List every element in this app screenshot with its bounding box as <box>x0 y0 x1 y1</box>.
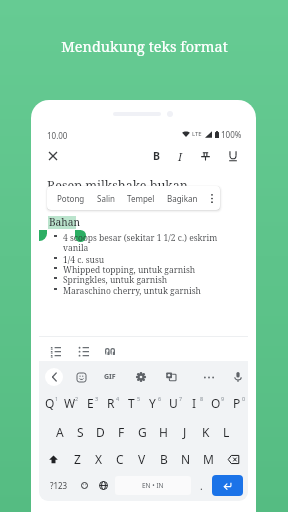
staticText: V <box>138 451 146 467</box>
button[interactable]: I <box>184 392 205 414</box>
button[interactable]: Bulleted list <box>73 341 93 361</box>
button[interactable]: Strikethrough <box>195 146 215 166</box>
button[interactable]: Shift <box>39 448 67 470</box>
button[interactable]: G <box>132 421 153 443</box>
button[interactable]: B <box>146 146 166 166</box>
staticText: H <box>159 424 168 440</box>
button[interactable]: Y <box>142 392 163 414</box>
button[interactable]: Bagikan <box>161 186 204 210</box>
staticText: 4 scoops besar (sekitar 1 1/2 c.) eskrim… <box>63 232 248 254</box>
staticText: ?123 <box>50 480 68 491</box>
staticText: F <box>118 424 125 440</box>
button[interactable]: S <box>70 421 90 443</box>
button[interactable]: W <box>60 392 80 414</box>
button[interactable]: C <box>109 448 131 470</box>
staticText: 1 <box>55 395 59 402</box>
staticText: 1/4 c. susu <box>63 254 248 266</box>
button[interactable]: Tempel <box>121 186 161 210</box>
staticText: Bahan <box>49 215 80 229</box>
button[interactable]: B <box>153 448 175 470</box>
button[interactable]: M <box>197 448 219 470</box>
staticText: LTE <box>192 130 202 138</box>
staticText: GIF <box>104 372 116 382</box>
button[interactable]: F <box>111 421 132 443</box>
button[interactable]: Translate <box>162 368 180 386</box>
staticText: I <box>178 149 183 164</box>
button[interactable]: Voice input <box>229 368 247 386</box>
button[interactable]: Settings <box>132 368 150 386</box>
button[interactable]: Backspace <box>219 448 248 470</box>
staticText: 8 <box>200 395 204 402</box>
staticText: D <box>96 424 105 440</box>
staticText: K <box>202 424 210 440</box>
staticText: Whipped topping, untuk garnish <box>63 264 248 276</box>
staticText: B <box>160 451 168 467</box>
button[interactable]: P <box>226 392 247 414</box>
staticText: Q <box>45 395 55 411</box>
staticText: Maraschino cherry, untuk garnish <box>63 285 248 297</box>
staticText: N <box>181 451 191 467</box>
staticText: 6 <box>158 395 162 402</box>
staticText: 9 <box>221 395 225 402</box>
staticText: R <box>107 395 115 411</box>
staticText: S <box>77 424 84 440</box>
button[interactable]: D <box>90 421 111 443</box>
button[interactable]: ?123 <box>42 475 75 496</box>
button[interactable]: T <box>121 392 142 414</box>
button[interactable]: . <box>193 475 210 496</box>
button[interactable]: EN • IN <box>115 476 191 495</box>
button[interactable]: Q <box>40 392 60 414</box>
staticText: P <box>233 395 241 411</box>
button[interactable]: More options <box>200 368 218 386</box>
button[interactable]: J <box>174 421 195 443</box>
staticText: 100% <box>221 129 242 139</box>
staticText: T <box>128 395 135 411</box>
staticText: J <box>183 424 187 440</box>
button[interactable]: E <box>80 392 100 414</box>
button[interactable]: O <box>205 392 226 414</box>
staticText: Salin <box>97 193 115 204</box>
button[interactable]: GIF <box>101 368 119 386</box>
staticText: 3 <box>95 395 99 402</box>
button[interactable]: H <box>153 421 174 443</box>
staticText: A <box>56 424 64 440</box>
button[interactable]: Emoji <box>75 475 94 496</box>
staticText: L <box>223 424 230 440</box>
button[interactable]: Salin <box>91 186 121 210</box>
button[interactable]: Close <box>43 146 63 166</box>
button[interactable]: R <box>100 392 121 414</box>
button[interactable]: N <box>175 448 197 470</box>
staticText: 0 <box>242 395 246 402</box>
staticText: . <box>200 479 203 493</box>
staticText: I <box>192 395 197 411</box>
staticText: G <box>138 424 147 440</box>
staticText: Y <box>149 395 156 411</box>
button[interactable]: L <box>216 421 237 443</box>
staticText: B <box>153 149 160 163</box>
button[interactable]: Language <box>94 475 113 496</box>
button[interactable]: More options <box>204 186 220 210</box>
button[interactable]: X <box>88 448 109 470</box>
staticText: C <box>116 451 124 467</box>
button[interactable]: Quote <box>100 341 120 361</box>
button[interactable]: V <box>131 448 153 470</box>
button[interactable]: I <box>170 146 190 166</box>
button[interactable]: Numbered list <box>45 341 65 361</box>
button[interactable]: Stickers <box>72 368 90 386</box>
staticText: W <box>64 395 76 411</box>
staticText: Tempel <box>127 193 155 204</box>
staticText: EN • IN <box>142 481 164 490</box>
staticText: U <box>169 395 178 411</box>
button[interactable]: Z <box>67 448 88 470</box>
button[interactable]: Potong <box>51 186 91 210</box>
staticText: 7 <box>179 395 183 402</box>
button[interactable]: A <box>50 421 70 443</box>
button[interactable]: Enter <box>212 475 243 496</box>
button[interactable]: Underline <box>223 146 243 166</box>
staticText: 2 <box>75 395 79 402</box>
button[interactable]: Back <box>45 368 63 386</box>
button[interactable]: K <box>195 421 216 443</box>
staticText: Z <box>74 451 81 467</box>
button[interactable]: U <box>163 392 184 414</box>
staticText: Bagikan <box>167 193 198 204</box>
